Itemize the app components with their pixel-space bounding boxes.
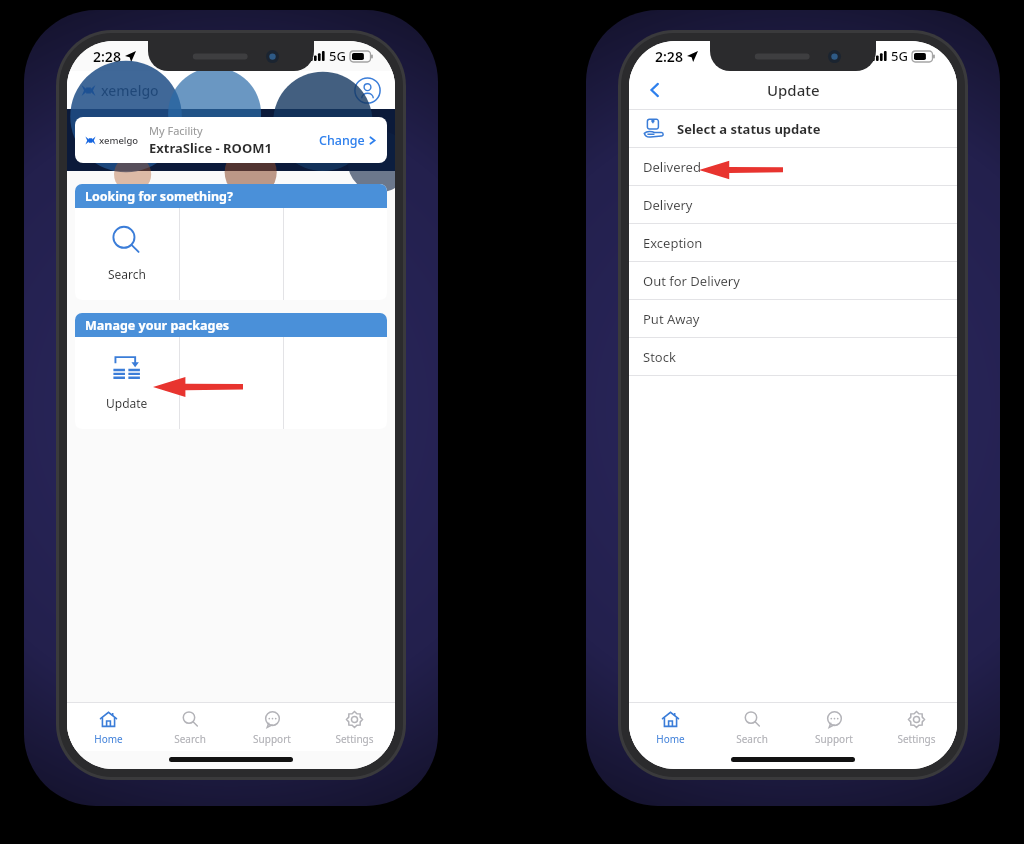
button[interactable]: Stock <box>629 338 957 375</box>
staticText: Home <box>94 732 123 746</box>
staticText: Search <box>108 266 146 282</box>
button[interactable]: Search <box>149 703 231 751</box>
button[interactable]: Home <box>67 703 149 751</box>
button[interactable]: Search <box>711 703 793 751</box>
staticText: xemelgo <box>99 134 139 147</box>
button[interactable]: Put Away <box>629 300 957 337</box>
button[interactable]: Support <box>231 703 313 751</box>
staticText: Delivery <box>643 196 693 214</box>
button[interactable]: Out for Delivery <box>629 262 957 299</box>
staticText: 2:28 <box>93 47 121 66</box>
staticText: Search <box>736 732 768 746</box>
button[interactable]: Settings <box>875 703 957 751</box>
staticText: Put Away <box>643 310 700 328</box>
button[interactable]: Delivery <box>629 186 957 223</box>
button[interactable]: Search <box>75 208 179 300</box>
staticText: Out for Delivery <box>643 272 740 290</box>
staticText: Manage your packages <box>85 317 230 334</box>
staticText: Update <box>106 395 148 411</box>
button[interactable]: Profile <box>354 77 381 104</box>
staticText: Settings <box>897 732 936 746</box>
staticText: Home <box>656 732 685 746</box>
staticText: Search <box>174 732 206 746</box>
staticText: Delivered <box>643 158 701 176</box>
staticText: 5G <box>891 47 908 65</box>
button[interactable]: xemelgo <box>75 117 387 163</box>
button[interactable]: Update <box>75 337 179 429</box>
staticText: Looking for something? <box>85 188 233 205</box>
staticText: Stock <box>643 348 676 366</box>
button[interactable]: Home <box>629 703 711 751</box>
staticText: Change <box>319 132 365 149</box>
staticText: 2:28 <box>655 47 683 66</box>
staticText: Select a status update <box>677 120 821 138</box>
button[interactable]: Exception <box>629 224 957 261</box>
staticText: Support <box>815 732 853 746</box>
staticText: xemelgo <box>101 81 159 100</box>
staticText: Update <box>767 80 820 100</box>
button[interactable]: Back <box>639 74 671 106</box>
staticText: ExtraSlice - ROOM1 <box>149 139 272 157</box>
staticText: My Facility <box>149 123 203 138</box>
staticText: Settings <box>335 732 374 746</box>
button[interactable]: Settings <box>313 703 395 751</box>
button[interactable]: Support <box>793 703 875 751</box>
button[interactable]: Delivered <box>629 148 957 185</box>
staticText: Support <box>253 732 291 746</box>
staticText: 5G <box>329 47 346 65</box>
staticText: Exception <box>643 234 703 252</box>
